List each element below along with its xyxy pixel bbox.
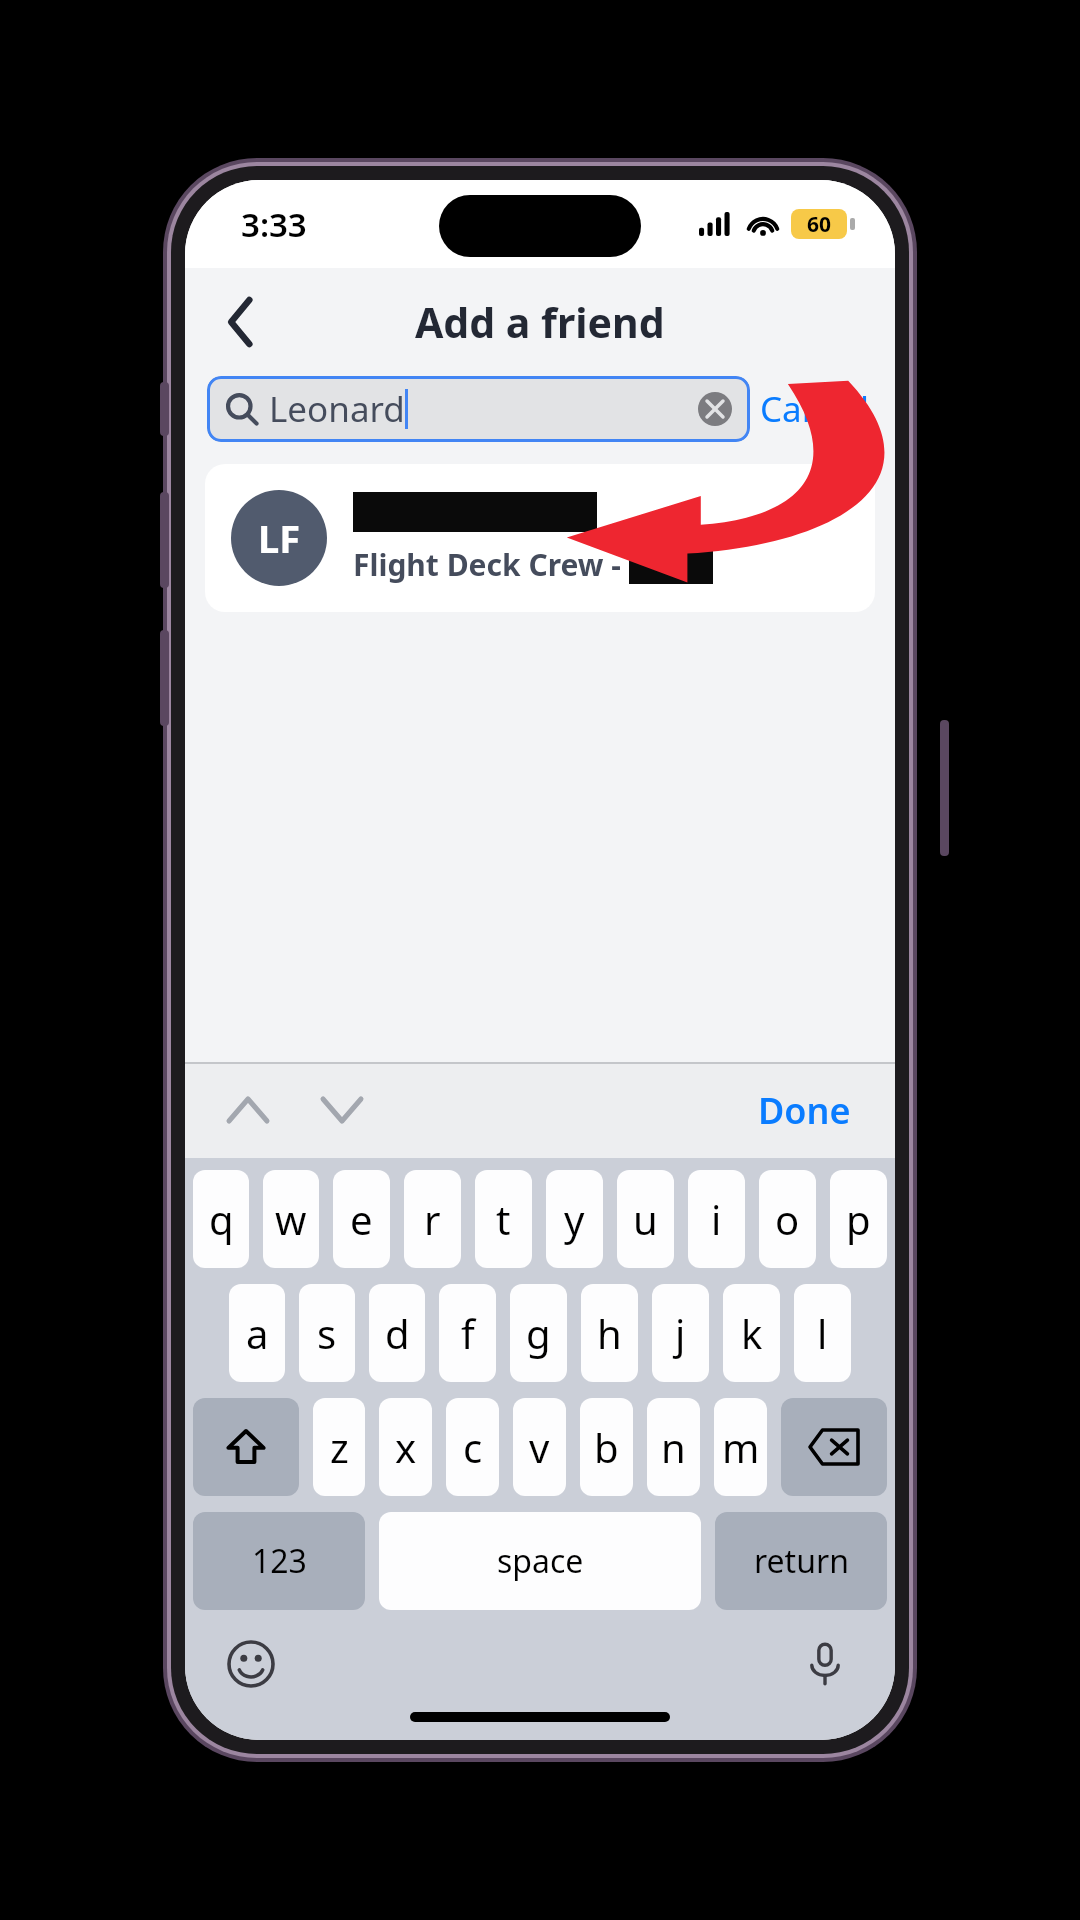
staticText: a — [246, 1306, 269, 1360]
button[interactable]: p — [830, 1170, 887, 1268]
button[interactable]: h — [581, 1284, 638, 1382]
staticText: Add a friend — [415, 294, 665, 350]
button[interactable]: LF — [205, 464, 875, 612]
staticText: 60 — [807, 210, 832, 239]
staticText: v — [529, 1420, 550, 1474]
staticText: o — [775, 1192, 800, 1246]
button[interactable]: b — [580, 1398, 633, 1496]
staticText: Cancel — [760, 385, 869, 433]
button[interactable]: r — [404, 1170, 461, 1268]
button[interactable]: j — [652, 1284, 709, 1382]
staticText: z — [330, 1420, 349, 1474]
button[interactable]: f — [439, 1284, 496, 1382]
staticText: u — [633, 1192, 658, 1246]
button[interactable]: k — [723, 1284, 780, 1382]
staticText: b — [594, 1420, 619, 1474]
staticText: y — [564, 1192, 585, 1246]
staticText: q — [209, 1192, 234, 1246]
staticText: l — [817, 1306, 828, 1360]
staticText: k — [741, 1306, 763, 1360]
button[interactable]: c — [446, 1398, 499, 1496]
button[interactable]: n — [647, 1398, 700, 1496]
staticText: return — [754, 1539, 849, 1583]
staticText: w — [275, 1192, 307, 1246]
button[interactable]: y — [546, 1170, 603, 1268]
staticText: i — [711, 1192, 722, 1246]
button[interactable]: m — [714, 1398, 767, 1496]
staticText: s — [317, 1306, 337, 1360]
button[interactable]: v — [513, 1398, 566, 1496]
button[interactable]: e — [333, 1170, 390, 1268]
staticText: d — [385, 1306, 410, 1360]
staticText: j — [675, 1306, 686, 1360]
button[interactable]: Emoji — [223, 1636, 279, 1692]
staticText: r — [424, 1192, 441, 1246]
button[interactable]: Cancel — [750, 377, 879, 441]
staticText: e — [350, 1192, 373, 1246]
button[interactable]: Next field — [313, 1081, 371, 1139]
button[interactable]: o — [759, 1170, 816, 1268]
staticText: 123 — [252, 1539, 307, 1583]
staticText: g — [526, 1306, 551, 1360]
staticText: m — [722, 1420, 760, 1474]
staticText: f — [461, 1306, 475, 1360]
staticText: x — [395, 1420, 417, 1474]
staticText: t — [496, 1192, 511, 1246]
staticText: c — [463, 1420, 483, 1474]
button[interactable]: Clear text — [698, 392, 732, 426]
button[interactable]: g — [510, 1284, 567, 1382]
staticText: Leonard — [269, 385, 405, 433]
button[interactable]: w — [263, 1170, 319, 1268]
staticText: p — [846, 1192, 871, 1246]
button[interactable]: Backspace — [781, 1398, 887, 1496]
button[interactable]: i — [688, 1170, 745, 1268]
staticText: 3:33 — [241, 202, 307, 247]
button[interactable]: Back — [203, 284, 279, 360]
staticText: h — [597, 1306, 622, 1360]
staticText: Flight Deck Crew - — [353, 544, 629, 585]
button[interactable]: Done — [750, 1078, 859, 1143]
button[interactable]: t — [475, 1170, 532, 1268]
button[interactable]: x — [379, 1398, 432, 1496]
button[interactable]: a — [229, 1284, 285, 1382]
button[interactable]: d — [369, 1284, 425, 1382]
button[interactable]: return — [715, 1512, 887, 1610]
button[interactable]: Previous field — [219, 1081, 277, 1139]
button[interactable]: 123 — [193, 1512, 365, 1610]
button[interactable]: Dictation — [797, 1636, 853, 1692]
staticText: space — [497, 1539, 584, 1583]
staticText: n — [661, 1420, 686, 1474]
button[interactable]: s — [299, 1284, 355, 1382]
button[interactable]: z — [313, 1398, 365, 1496]
button[interactable]: Leonard — [225, 376, 732, 442]
button[interactable]: l — [794, 1284, 851, 1382]
button[interactable]: Shift — [193, 1398, 299, 1496]
button[interactable]: q — [193, 1170, 249, 1268]
staticText: Done — [758, 1086, 851, 1135]
button[interactable]: u — [617, 1170, 674, 1268]
button[interactable]: space — [379, 1512, 701, 1610]
staticText: LF — [258, 512, 301, 564]
